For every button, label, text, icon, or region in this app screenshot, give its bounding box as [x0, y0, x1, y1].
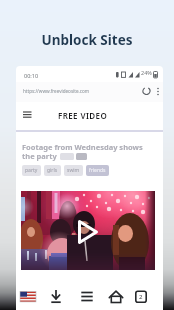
button[interactable]	[21, 191, 155, 270]
button[interactable]	[20, 108, 36, 124]
button[interactable]: https://www.freevideosite.com	[16, 82, 163, 102]
button[interactable]	[80, 288, 100, 308]
button[interactable]: swim	[64, 165, 83, 176]
button[interactable]	[24, 288, 44, 308]
staticText: girls	[47, 167, 58, 174]
button[interactable]	[52, 288, 72, 308]
staticText: Unblock Sites	[0, 31, 174, 49]
button[interactable]: girls	[44, 165, 61, 176]
button[interactable]	[135, 288, 155, 308]
staticText: 24%	[141, 69, 152, 76]
staticText: the party	[22, 151, 57, 161]
staticText: Footage from Wednesday shows	[22, 142, 143, 152]
button[interactable]: friends	[86, 165, 109, 176]
staticText: swim	[67, 167, 80, 174]
staticText: 2	[139, 293, 143, 301]
button[interactable]: party	[22, 165, 41, 176]
staticText: friends	[89, 167, 106, 174]
button[interactable]	[107, 288, 127, 308]
staticText: party	[25, 167, 38, 174]
staticText: 00:10	[24, 72, 39, 79]
staticText: FREE VIDEO	[58, 110, 108, 121]
staticText: https://www.freevideosite.com	[23, 88, 90, 94]
